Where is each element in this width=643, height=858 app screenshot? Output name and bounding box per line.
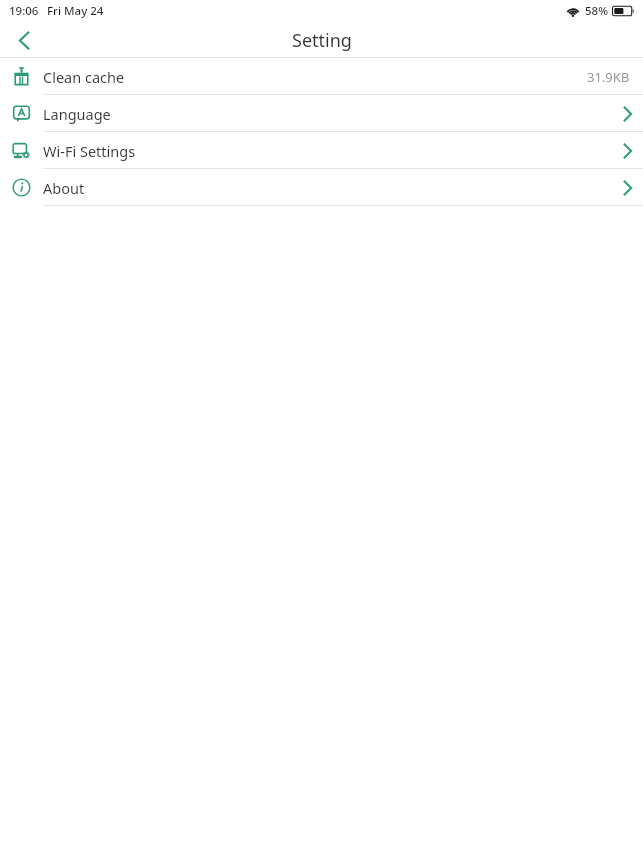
staticText: Clean cache bbox=[43, 67, 587, 87]
staticText: About bbox=[43, 178, 611, 198]
button[interactable]: Clean cache bbox=[0, 58, 643, 95]
staticText: Fri May 24 bbox=[47, 3, 104, 19]
button[interactable]: About bbox=[0, 169, 643, 206]
staticText: 58% bbox=[585, 3, 608, 19]
button[interactable]: Wi-Fi Settings bbox=[0, 132, 643, 169]
staticText: 31.9KB bbox=[587, 68, 630, 86]
button[interactable]: Language bbox=[0, 95, 643, 132]
staticText: Language bbox=[43, 104, 611, 124]
staticText: Wi-Fi Settings bbox=[43, 141, 611, 161]
staticText: 19:06 bbox=[9, 3, 39, 19]
staticText: Setting bbox=[292, 28, 352, 53]
button[interactable]: Back bbox=[0, 22, 48, 58]
